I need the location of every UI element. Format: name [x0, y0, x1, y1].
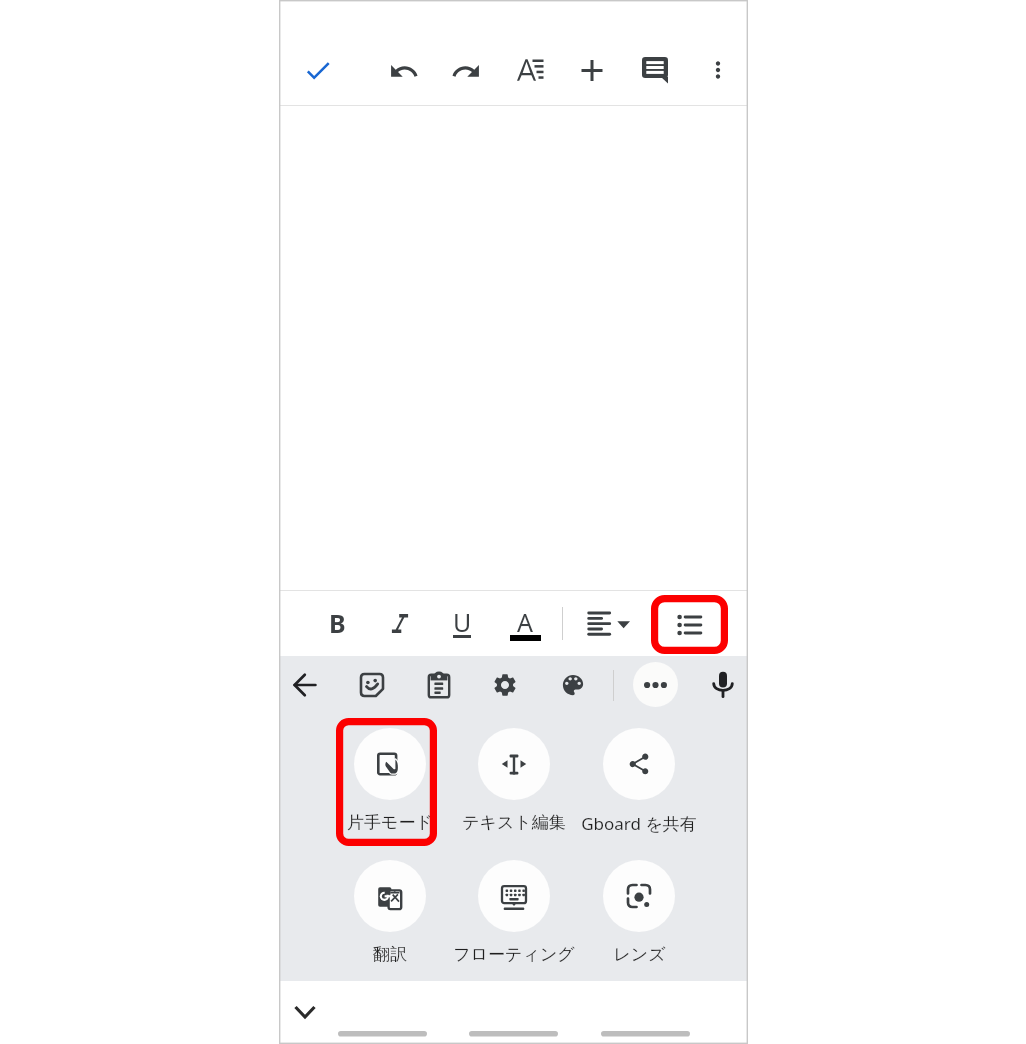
button[interactable]: More keyboard options: [633, 662, 678, 707]
button[interactable]: Clipboard: [415, 661, 463, 709]
staticText: A: [517, 605, 533, 639]
button[interactable]: Redo: [442, 46, 490, 94]
button[interactable]: More options: [694, 46, 742, 94]
button[interactable]: Insert: [568, 46, 616, 94]
staticText: Gboard を共有: [581, 812, 697, 835]
button[interactable]: Gboard を共有: [578, 728, 700, 840]
button[interactable]: 片手モード: [329, 728, 451, 840]
button[interactable]: Bulleted list: [667, 600, 715, 648]
button[interactable]: Undo: [380, 46, 428, 94]
staticText: テキスト編集: [462, 812, 566, 833]
button[interactable]: B: [313, 600, 361, 648]
staticText: フローティング: [453, 944, 575, 965]
button[interactable]: Themes: [549, 661, 597, 709]
staticText: B: [329, 606, 346, 640]
button[interactable]: Underline: [438, 600, 486, 648]
button[interactable]: Back: [281, 661, 329, 709]
button[interactable]: Stickers: [348, 661, 396, 709]
button[interactable]: Comment: [631, 46, 679, 94]
staticText: U: [453, 605, 472, 639]
button[interactable]: Text color: [501, 600, 549, 648]
button[interactable]: Alignment: [576, 600, 624, 648]
button[interactable]: Voice input: [699, 661, 747, 709]
button[interactable]: 翻訳: [329, 860, 451, 972]
button[interactable]: Settings: [481, 661, 529, 709]
button[interactable]: フローティング: [453, 860, 575, 972]
button[interactable]: Hide keyboard: [281, 988, 329, 1036]
button[interactable]: Done: [294, 46, 342, 94]
button[interactable]: Text formatting: [506, 46, 554, 94]
button[interactable]: テキスト編集: [453, 728, 575, 840]
button[interactable]: Italic: [376, 600, 424, 648]
staticText: レンズ: [613, 944, 666, 965]
staticText: 翻訳: [373, 944, 407, 965]
staticText: 片手モード: [347, 812, 433, 833]
button[interactable]: レンズ: [578, 860, 700, 972]
